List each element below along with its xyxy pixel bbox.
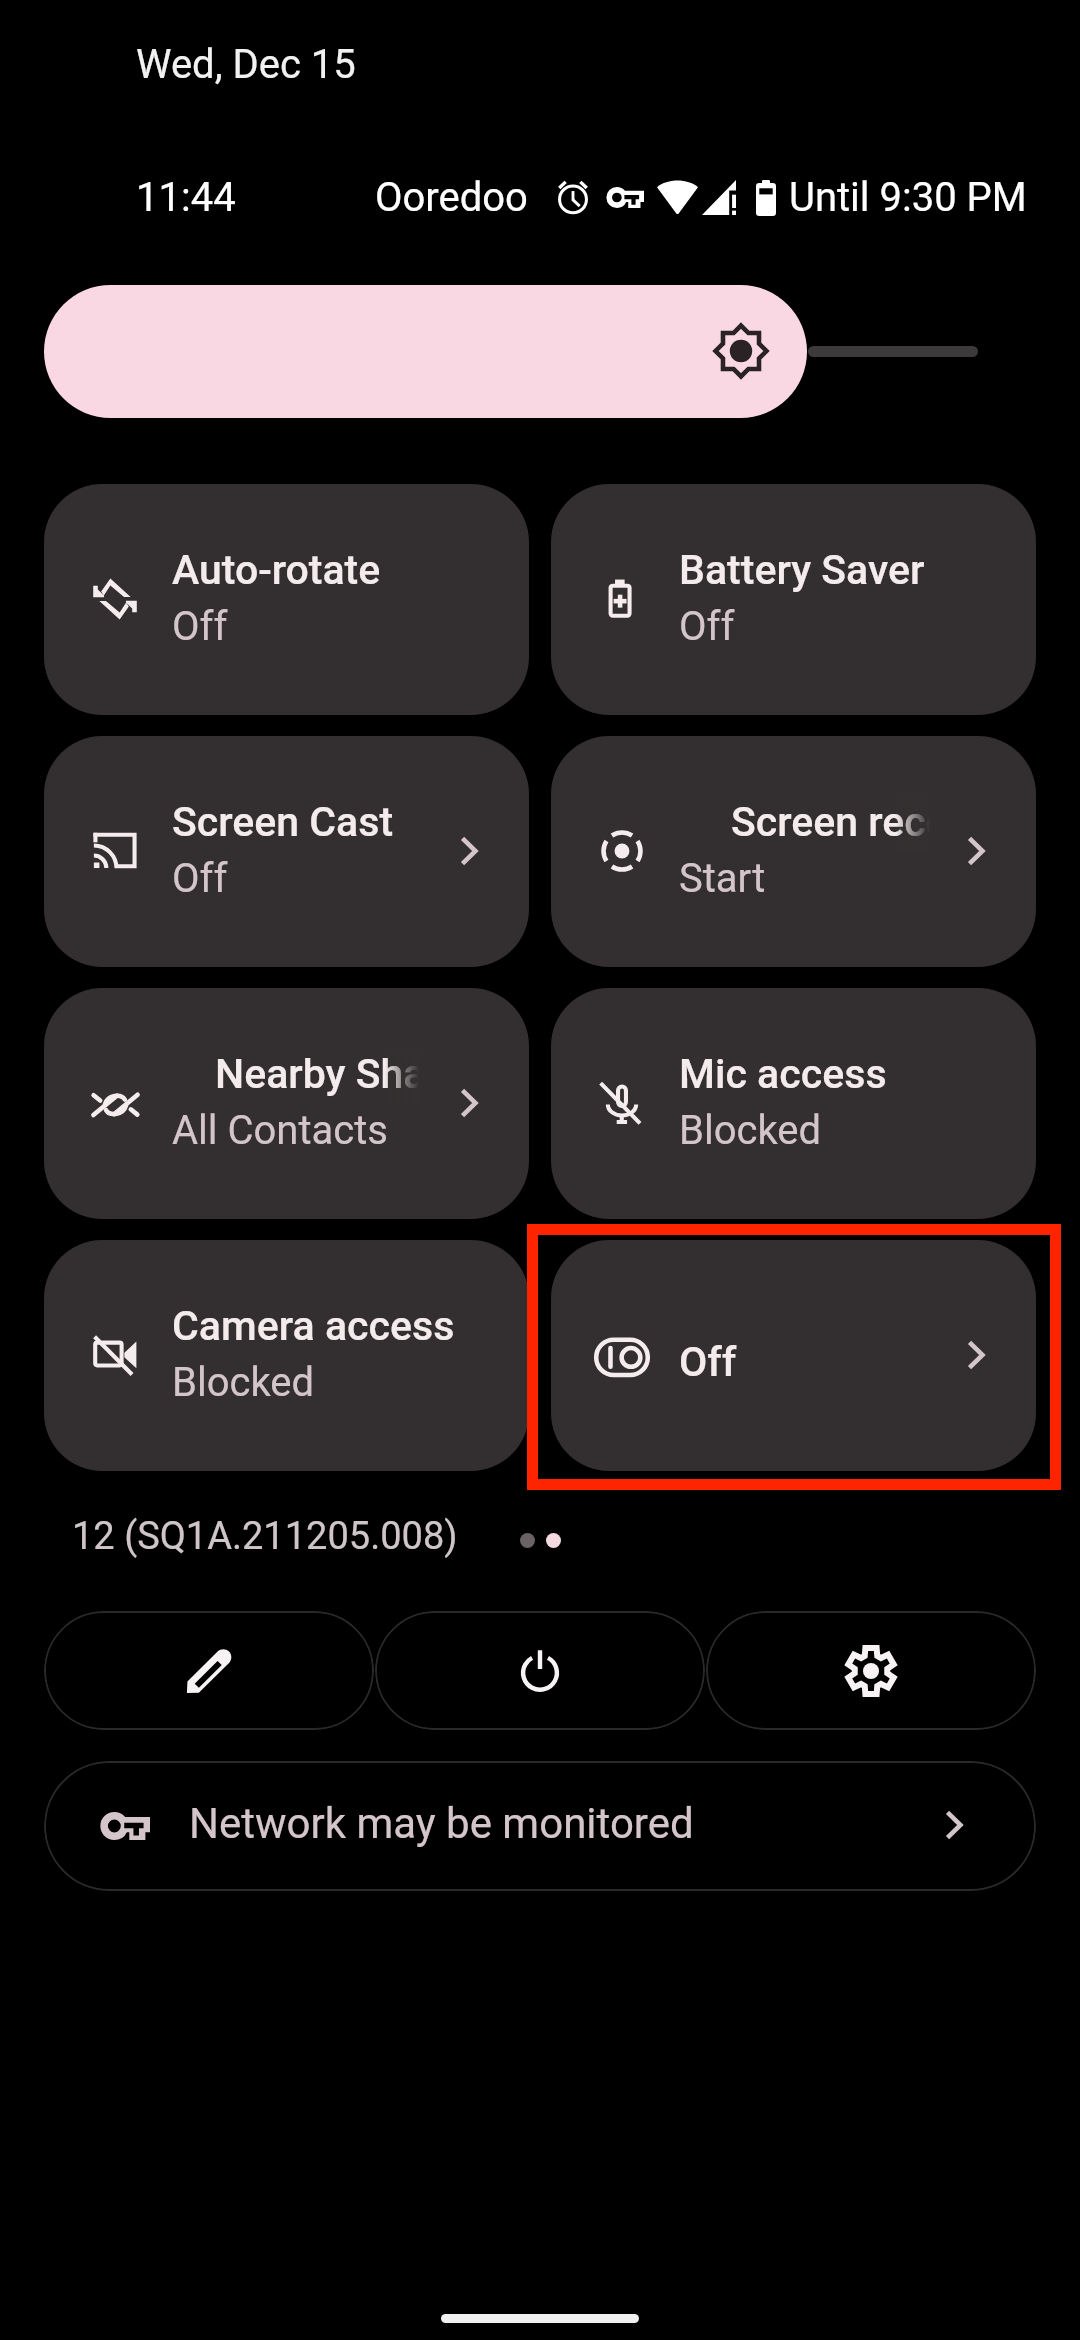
staticText: 11:44 <box>136 174 236 221</box>
staticText: Off <box>679 1338 737 1386</box>
staticText: Camera access <box>172 1302 455 1350</box>
button[interactable]: Screen Cast <box>44 736 529 967</box>
staticText: Ooredoo <box>375 174 528 221</box>
staticText: Mic access <box>679 1050 887 1098</box>
staticText: Nearby Share <box>215 1050 419 1098</box>
button[interactable]: Nearby Share <box>44 988 529 1219</box>
staticText: Network may be monitored <box>189 1799 694 1848</box>
button[interactable]: Settings <box>706 1611 1036 1730</box>
staticText: 12 (SQ1A.211205.008) <box>72 1514 458 1559</box>
button[interactable]: Auto-rotate <box>44 484 529 715</box>
staticText: Off <box>172 855 228 902</box>
button[interactable]: Power <box>375 1611 705 1730</box>
staticText: All Contacts <box>172 1107 388 1154</box>
staticText: Blocked <box>679 1107 822 1154</box>
staticText: Start <box>679 855 766 902</box>
staticText: Screen recorder <box>731 798 930 846</box>
staticText: Screen Cast <box>172 798 394 846</box>
staticText: Auto-rotate <box>172 546 381 594</box>
staticText: Off <box>172 603 228 650</box>
button[interactable]: Camera access <box>44 1240 529 1471</box>
staticText: Off <box>679 603 735 650</box>
button[interactable]: Brightness <box>44 285 807 418</box>
staticText: Wed, Dec 15 <box>136 41 356 88</box>
staticText: Until 9:30 PM <box>789 174 1027 221</box>
button[interactable]: Off <box>551 1240 1036 1471</box>
button[interactable]: Battery Saver <box>551 484 1036 715</box>
button[interactable]: Network may be monitored <box>44 1761 1036 1891</box>
staticText: Blocked <box>172 1359 315 1406</box>
button[interactable]: Edit tiles <box>44 1611 374 1730</box>
button[interactable]: Screen recorder <box>551 736 1036 967</box>
button[interactable]: Mic access <box>551 988 1036 1219</box>
staticText: Battery Saver <box>679 546 925 594</box>
